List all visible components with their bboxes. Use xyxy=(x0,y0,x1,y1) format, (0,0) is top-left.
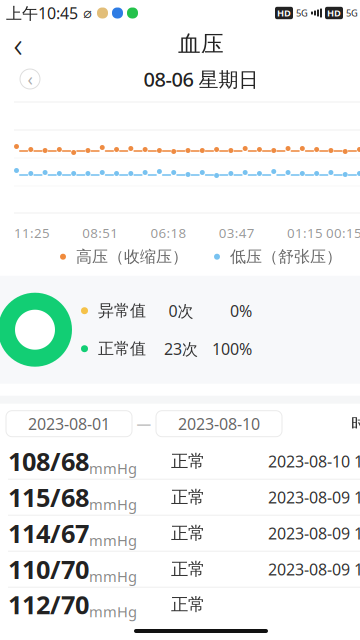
staticText: 06:18 xyxy=(150,224,186,242)
staticText: 正常值 xyxy=(88,339,146,359)
staticText: 2023-08-09 15:34 xyxy=(268,559,360,580)
staticText: 2023-08-09 16:36 xyxy=(268,487,360,508)
staticText: 5G xyxy=(346,7,358,19)
staticText: mmHg xyxy=(89,494,137,514)
staticText: 2023-08-01 xyxy=(28,413,110,434)
staticText: 高压（收缩压） xyxy=(66,247,188,267)
staticText: ‹ xyxy=(13,21,22,67)
staticText: 正常 xyxy=(171,451,205,472)
staticText: 血压 xyxy=(178,30,224,58)
staticText: 正常 xyxy=(171,487,205,508)
staticText: 23次 xyxy=(164,338,198,359)
staticText: 112/70 xyxy=(8,588,89,621)
staticText: mmHg xyxy=(89,458,137,478)
staticText: 2023-08-10 xyxy=(178,413,260,434)
staticText: ⌀ xyxy=(78,5,92,21)
staticText: mmHg xyxy=(89,566,137,586)
staticText: 2023-08-09 16:05 xyxy=(268,523,360,544)
button[interactable]: 2023-08-10 xyxy=(156,411,282,437)
staticText: 0% xyxy=(230,300,252,321)
staticText: HD xyxy=(327,7,341,19)
button[interactable]: 110/70 xyxy=(0,552,360,588)
button[interactable]: 114/67 xyxy=(0,516,360,552)
staticText: mmHg xyxy=(89,602,137,621)
staticText: 00:15 xyxy=(323,224,360,242)
staticText: ‹ xyxy=(27,67,32,90)
button[interactable]: 2023-08-01 xyxy=(6,411,132,437)
staticText: 低压（舒张压） xyxy=(220,247,342,267)
button[interactable]: 108/68 xyxy=(0,444,360,480)
staticText: 5G xyxy=(296,7,308,19)
staticText: 异常值 xyxy=(88,301,146,321)
staticText: 0次 xyxy=(168,300,193,321)
staticText: 114/67 xyxy=(8,516,89,550)
staticText: 11:25 xyxy=(14,224,50,242)
staticText: 2023-08-10 10:43 xyxy=(268,451,360,472)
staticText: 03:47 xyxy=(219,224,255,242)
staticText: 正常 xyxy=(171,523,205,544)
staticText: 上午10:45 xyxy=(6,2,78,24)
button[interactable]: 前一天 xyxy=(20,69,40,89)
staticText: 时间 xyxy=(351,414,360,434)
button[interactable]: 115/68 xyxy=(0,480,360,516)
staticText: 正常 xyxy=(171,559,205,580)
staticText: 08:51 xyxy=(82,224,118,242)
staticText: 01:15 xyxy=(287,224,323,242)
staticText: 110/70 xyxy=(8,552,89,586)
staticText: — xyxy=(136,414,151,433)
staticText: 108/68 xyxy=(8,444,89,478)
staticText: mmHg xyxy=(89,530,137,550)
staticText: 115/68 xyxy=(8,480,89,514)
staticText: 100% xyxy=(212,338,252,359)
staticText: 08-06 星期日 xyxy=(143,66,258,92)
staticText: 正常 xyxy=(171,594,205,615)
button[interactable]: 时间 xyxy=(351,411,360,437)
staticText: HD xyxy=(277,7,291,19)
button[interactable]: 返回 xyxy=(0,26,40,62)
